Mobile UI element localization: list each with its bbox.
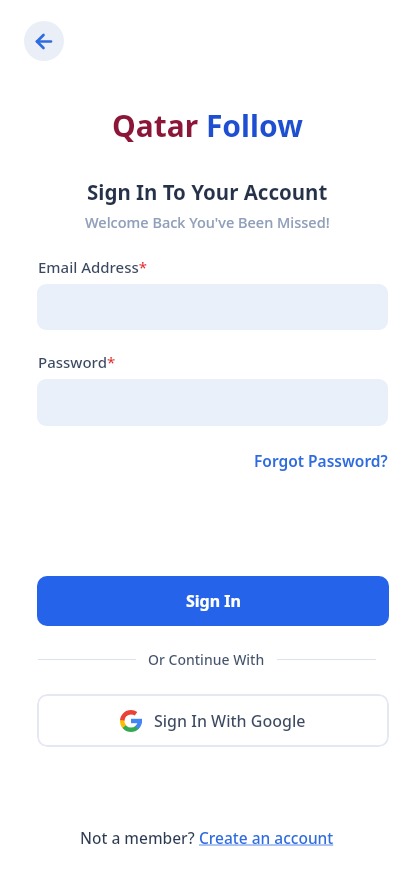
staticText: Create an account: [199, 827, 334, 847]
staticText: Or Continue With: [148, 650, 265, 668]
staticText: Password*: [38, 352, 116, 372]
staticText: Qatar Follow: [112, 105, 303, 146]
button[interactable]: Sign In: [37, 576, 389, 626]
staticText: Forgot Password?: [254, 450, 388, 471]
button[interactable]: Forgot Password?: [254, 450, 388, 471]
button[interactable]: Sign In With Google: [37, 694, 389, 747]
staticText: Sign In With Google: [154, 710, 306, 732]
staticText: Not a member?: [80, 827, 199, 847]
staticText: Email Address*: [38, 257, 148, 277]
button[interactable]: Create an account: [199, 827, 334, 847]
staticText: Welcome Back You've Been Missed!: [85, 212, 330, 232]
staticText: Sign In To Your Account: [87, 178, 328, 206]
button[interactable]: [24, 21, 64, 61]
staticText: Sign In: [186, 590, 241, 612]
